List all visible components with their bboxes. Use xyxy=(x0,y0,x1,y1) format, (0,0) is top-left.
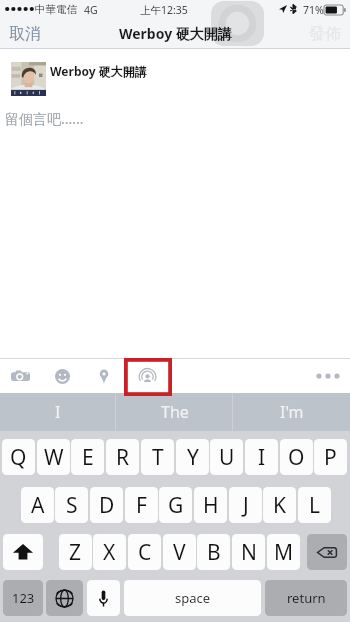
staticText: C xyxy=(138,538,152,567)
staticText: 123 xyxy=(12,589,35,607)
button[interactable]: B xyxy=(197,534,230,570)
staticText: Z xyxy=(69,538,82,567)
button[interactable]: D xyxy=(90,487,123,523)
button[interactable]: Photo xyxy=(3,359,37,393)
staticText: J xyxy=(243,491,249,520)
staticText: I'm xyxy=(280,401,304,423)
staticText: X xyxy=(103,538,116,567)
staticText: 71% xyxy=(303,3,324,17)
button[interactable]: X xyxy=(93,534,126,570)
button[interactable]: E xyxy=(71,439,104,475)
staticText: 上午12:35 xyxy=(140,3,188,17)
staticText: O xyxy=(288,443,305,472)
button[interactable]: N xyxy=(232,534,265,570)
button[interactable]: Shift xyxy=(3,534,43,570)
button[interactable]: The xyxy=(116,393,233,431)
button[interactable]: 123 xyxy=(3,580,43,616)
button[interactable]: Delete xyxy=(307,534,347,570)
button[interactable]: Location xyxy=(87,359,121,393)
button[interactable]: return xyxy=(265,580,347,616)
button[interactable]: 取消 xyxy=(9,24,41,44)
button[interactable]: AssistiveTouch xyxy=(211,1,264,46)
button[interactable]: K xyxy=(263,487,296,523)
staticText: A xyxy=(31,491,45,520)
staticText: E xyxy=(82,443,94,472)
staticText: 4G xyxy=(84,3,98,17)
button[interactable]: Z xyxy=(59,534,92,570)
staticText: B xyxy=(207,538,221,567)
button[interactable]: 發佈 xyxy=(309,24,341,44)
button[interactable]: Y xyxy=(176,439,209,475)
staticText: F xyxy=(136,491,147,520)
staticText: V xyxy=(173,538,186,567)
staticText: 取消 xyxy=(9,24,41,44)
button[interactable]: V xyxy=(163,534,196,570)
staticText: T xyxy=(152,443,164,472)
staticText: 留個言吧...... xyxy=(5,109,84,128)
button[interactable]: J xyxy=(229,487,262,523)
staticText: Werboy 硬大開講 xyxy=(119,24,232,43)
button[interactable]: H xyxy=(194,487,227,523)
button[interactable]: F xyxy=(125,487,158,523)
button[interactable]: M xyxy=(267,534,300,570)
staticText: G xyxy=(168,491,184,520)
button[interactable]: C xyxy=(128,534,161,570)
staticText: return xyxy=(287,589,326,607)
button[interactable]: S xyxy=(55,487,88,523)
button[interactable]: space xyxy=(124,580,261,616)
staticText: I xyxy=(55,401,61,423)
staticText: R xyxy=(116,443,130,472)
button[interactable]: I'm xyxy=(233,393,350,431)
button[interactable]: A xyxy=(21,487,54,523)
staticText: H xyxy=(203,491,219,520)
button[interactable]: P xyxy=(314,439,347,475)
staticText: M xyxy=(274,538,294,567)
button[interactable]: Tag people xyxy=(130,359,164,393)
button[interactable]: U xyxy=(210,439,243,475)
staticText: Q xyxy=(10,443,27,472)
button[interactable]: Q xyxy=(2,439,35,475)
staticText: Werboy 硬大開講 xyxy=(50,63,147,79)
button[interactable]: W xyxy=(37,439,70,475)
staticText: P xyxy=(324,443,337,472)
button[interactable]: Dictate xyxy=(87,580,120,616)
button[interactable]: G xyxy=(159,487,192,523)
staticText: The xyxy=(161,401,189,423)
staticText: U xyxy=(219,443,235,472)
button[interactable]: Change keyboard xyxy=(46,580,83,616)
button[interactable]: T xyxy=(141,439,174,475)
staticText: S xyxy=(66,491,78,520)
staticText: space xyxy=(175,589,211,607)
button[interactable]: I xyxy=(0,393,116,431)
staticText: D xyxy=(99,491,115,520)
staticText: 發佈 xyxy=(309,24,341,44)
staticText: N xyxy=(241,538,257,567)
staticText: Y xyxy=(187,443,199,472)
staticText: L xyxy=(309,491,321,520)
button[interactable]: L xyxy=(298,487,331,523)
button[interactable]: I xyxy=(245,439,278,475)
button[interactable]: Feeling xyxy=(45,359,79,393)
button[interactable]: R xyxy=(106,439,139,475)
staticText: K xyxy=(273,491,286,520)
staticText: 中華電信 xyxy=(35,3,77,16)
staticText: I xyxy=(258,443,266,472)
button[interactable]: More xyxy=(314,364,338,388)
staticText: W xyxy=(44,443,64,472)
button[interactable]: O xyxy=(280,439,313,475)
